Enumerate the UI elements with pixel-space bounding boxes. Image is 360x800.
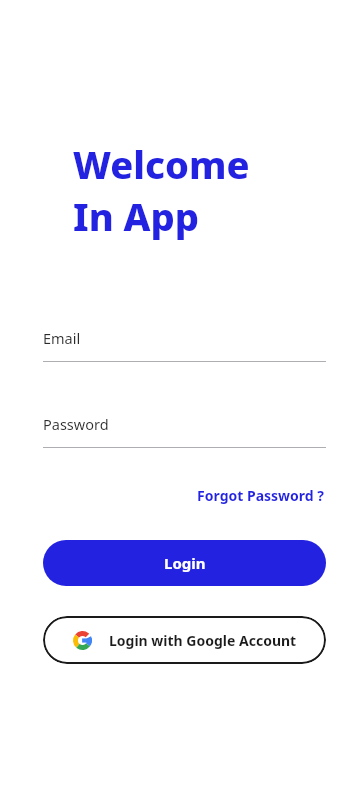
staticText: Password [43, 414, 109, 434]
staticText: Welcome [73, 138, 250, 190]
staticText: Login with Google Account [109, 631, 297, 650]
staticText: Login [164, 553, 206, 573]
button[interactable]: Google logo [43, 616, 326, 664]
button[interactable]: Email [43, 328, 326, 362]
button[interactable]: Forgot Password ? [195, 484, 326, 507]
other: Google logo [73, 631, 92, 650]
button[interactable]: Login [43, 540, 326, 586]
staticText: In App [73, 190, 199, 242]
button[interactable]: Password [43, 414, 326, 448]
staticText: Email [43, 328, 81, 348]
